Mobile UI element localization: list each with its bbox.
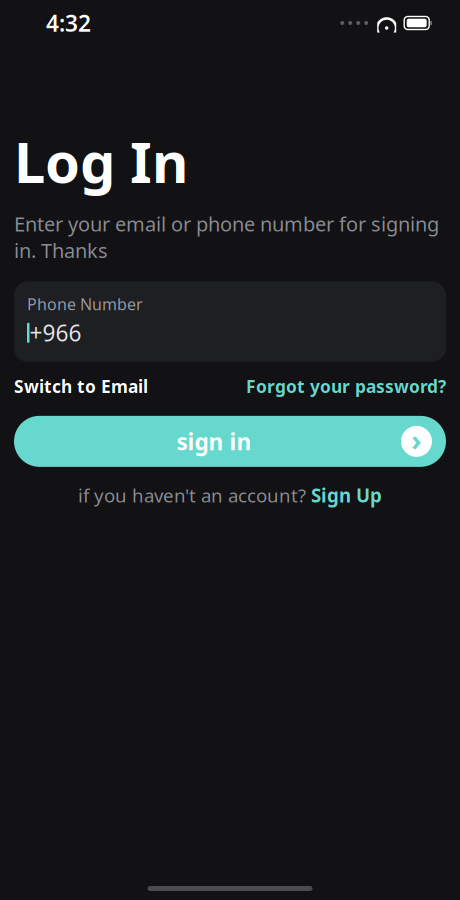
staticText: 4:32 [46, 8, 91, 38]
button[interactable]: sign in [14, 416, 446, 467]
button[interactable]: Phone Number [14, 281, 446, 362]
staticText: Phone Number [27, 293, 143, 315]
staticText: Log In [14, 124, 188, 198]
button[interactable]: Forgot your password? [246, 375, 446, 398]
staticText: › [411, 420, 422, 459]
button[interactable]: Switch to Email [14, 375, 148, 398]
staticText: if you haven't an account? [78, 483, 311, 508]
staticText: +966 [29, 318, 81, 348]
staticText: sign in [176, 426, 251, 456]
staticText: Sign Up [311, 483, 382, 508]
staticText: Switch to Email [14, 375, 148, 398]
staticText: Forgot your password? [246, 375, 446, 398]
staticText: Enter your email or phone number for sig… [14, 210, 439, 263]
button[interactable]: Sign Up [311, 483, 382, 508]
